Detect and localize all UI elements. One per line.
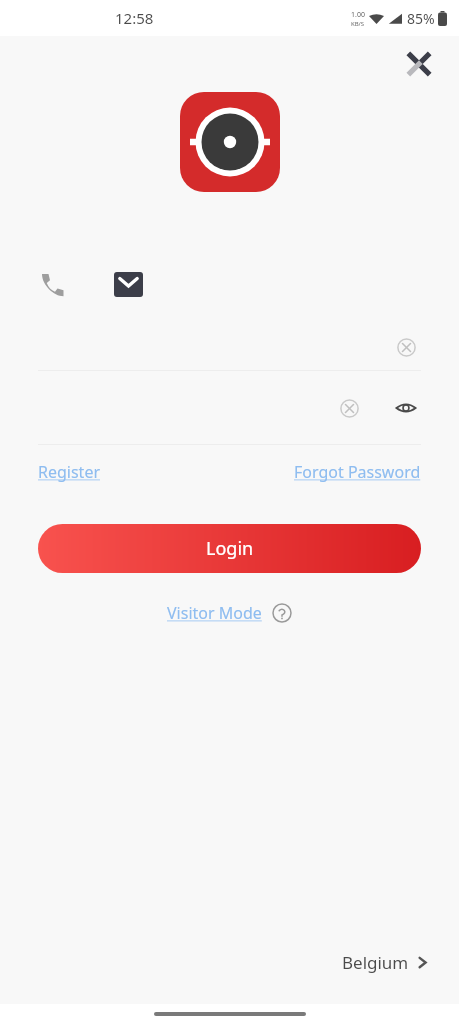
staticText: 85% bbox=[407, 9, 435, 28]
button[interactable]: Clear account bbox=[391, 332, 421, 362]
staticText: 1.00 bbox=[351, 10, 365, 20]
button[interactable]: Visitor Mode bbox=[167, 602, 262, 624]
button[interactable]: Phone login bbox=[30, 262, 74, 306]
button[interactable]: Clear password bbox=[334, 393, 364, 423]
button[interactable]: Login bbox=[38, 524, 421, 573]
staticText: KB/S bbox=[351, 20, 365, 28]
button[interactable]: Close bbox=[397, 42, 441, 86]
button[interactable]: Clear password bbox=[38, 371, 421, 444]
staticText: Visitor Mode bbox=[167, 602, 262, 624]
staticText: Login bbox=[206, 536, 254, 561]
button[interactable]: Show password bbox=[391, 393, 421, 423]
staticText: Register bbox=[38, 461, 101, 483]
button[interactable]: Register bbox=[38, 457, 101, 487]
button[interactable]: Email login bbox=[106, 262, 150, 306]
staticText: 12:58 bbox=[115, 8, 154, 28]
button[interactable]: Clear account bbox=[38, 324, 421, 370]
button[interactable]: Forgot Password bbox=[294, 457, 421, 487]
staticText: Forgot Password bbox=[294, 461, 421, 483]
button[interactable]: Visitor mode help bbox=[271, 602, 293, 624]
staticText: Belgium bbox=[342, 951, 409, 974]
button[interactable]: Belgium bbox=[338, 943, 433, 982]
